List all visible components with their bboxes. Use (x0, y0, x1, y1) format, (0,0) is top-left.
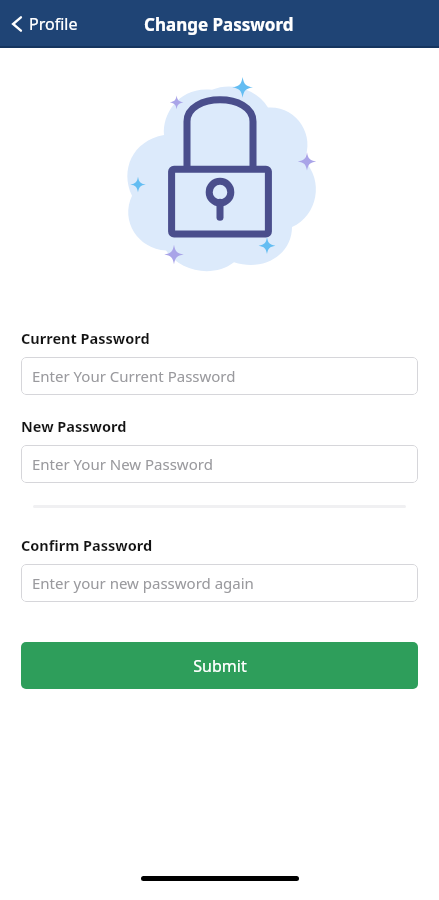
staticText: Submit (193, 655, 247, 677)
staticText: Change Password (144, 13, 294, 36)
staticText: Confirm Password (21, 535, 153, 555)
button[interactable]: Enter your new password again (21, 564, 418, 602)
staticText: Current Password (21, 328, 150, 348)
staticText: Enter your new password again (32, 573, 254, 593)
button[interactable]: Profile (8, 7, 80, 41)
button[interactable]: Submit (21, 642, 418, 689)
staticText: Profile (29, 13, 78, 35)
button[interactable]: Enter Your Current Password (21, 357, 418, 395)
staticText: Enter Your New Password (32, 454, 213, 474)
staticText: Enter Your Current Password (32, 366, 236, 386)
staticText: New Password (21, 416, 127, 436)
button[interactable]: Enter Your New Password (21, 445, 418, 483)
